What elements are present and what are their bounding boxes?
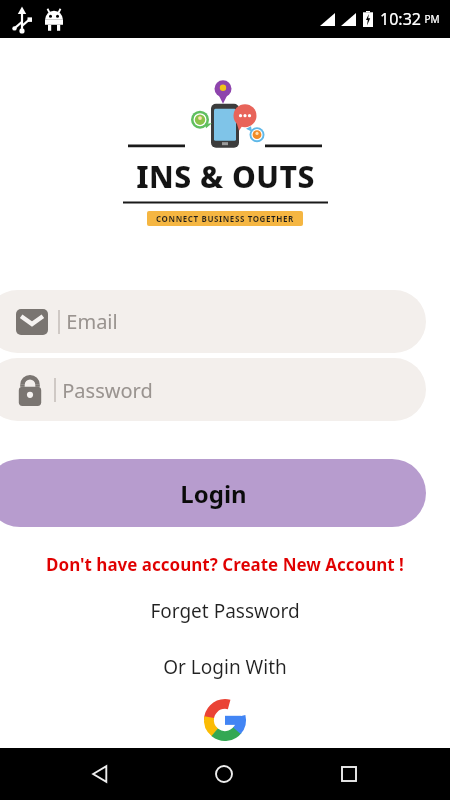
staticText: Don't have account? Create New Account ! <box>46 553 404 576</box>
button[interactable]: Email <box>0 290 426 353</box>
staticText: 10:32 <box>380 8 421 30</box>
staticText: INS & OUTS <box>136 156 315 197</box>
staticText: PM <box>424 12 440 26</box>
button[interactable]: Home <box>200 750 248 798</box>
button[interactable]: Forget Password <box>0 598 450 624</box>
staticText: Login <box>180 477 247 510</box>
button[interactable]: Back <box>76 750 124 798</box>
button[interactable]: Login <box>0 459 426 527</box>
button[interactable]: Password <box>0 358 426 421</box>
staticText: Or Login With <box>163 654 287 680</box>
button[interactable]: Sign in with Google <box>199 694 251 746</box>
staticText: Password <box>62 377 153 404</box>
button[interactable]: Don't have account? Create New Account ! <box>0 553 450 576</box>
button[interactable]: Recent apps <box>325 750 373 798</box>
staticText: Forget Password <box>150 598 300 624</box>
staticText: Email <box>66 308 118 335</box>
staticText: CONNECT BUSINESS TOGETHER <box>156 213 294 224</box>
